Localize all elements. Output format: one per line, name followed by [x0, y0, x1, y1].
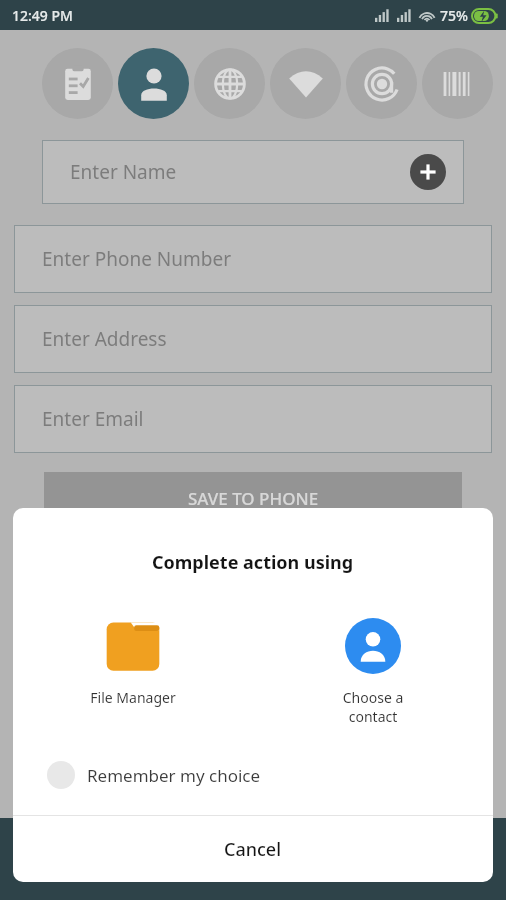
button[interactable]: Notes: [42, 48, 113, 119]
button[interactable]: File Manager: [13, 618, 253, 707]
staticText: Cancel: [224, 837, 282, 862]
button[interactable]: Enter Phone Number: [14, 225, 492, 293]
button[interactable]: Wifi: [270, 48, 341, 119]
staticText: Enter Phone Number: [42, 246, 231, 272]
staticText: Choose a contact: [318, 688, 428, 726]
button[interactable]: Enter Name: [42, 140, 464, 204]
button[interactable]: Enter Address: [14, 305, 492, 373]
staticText: Complete action using: [152, 550, 354, 575]
button[interactable]: Choose a contact: [253, 618, 493, 726]
button[interactable]: Contacts: [118, 48, 189, 119]
staticText: SAVE TO PHONE: [188, 487, 319, 510]
staticText: 75%: [440, 6, 468, 25]
button[interactable]: Cancel: [13, 816, 493, 882]
staticText: Enter Email: [42, 406, 144, 432]
staticText: Enter Address: [42, 326, 167, 352]
button[interactable]: Barcode: [422, 48, 493, 119]
staticText: Remember my choice: [87, 764, 261, 787]
button[interactable]: SAVE TO PHONE: [44, 472, 462, 524]
staticText: 12:49 PM: [12, 6, 73, 25]
button[interactable]: Remember my choice: [13, 752, 493, 798]
staticText: File Manager: [90, 688, 176, 707]
button[interactable]: Web: [194, 48, 265, 119]
button[interactable]: Enter Email: [14, 385, 492, 453]
button[interactable]: Email: [346, 48, 417, 119]
staticText: Enter Name: [70, 159, 177, 185]
button[interactable]: Add: [410, 154, 446, 190]
